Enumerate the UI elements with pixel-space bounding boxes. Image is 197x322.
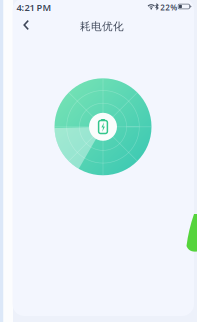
staticText: 4:21 PM — [16, 1, 51, 14]
button[interactable]: Back — [17, 16, 37, 34]
staticText: 22% — [160, 2, 177, 13]
staticText: 耗电优化 — [80, 20, 124, 33]
